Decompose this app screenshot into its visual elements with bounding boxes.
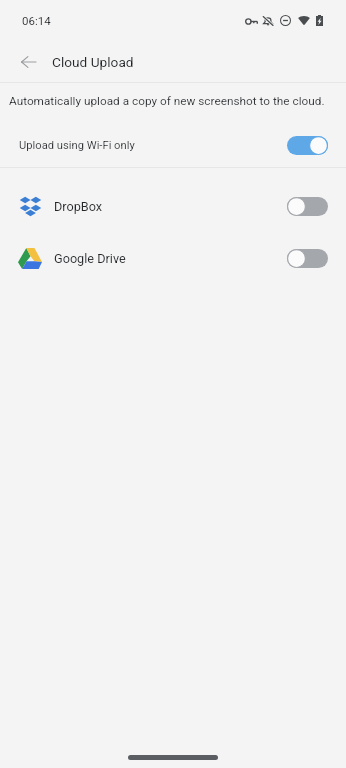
staticText: DropBox xyxy=(54,199,103,214)
button[interactable]: Back xyxy=(8,42,48,82)
staticText: Google Drive xyxy=(54,251,126,266)
staticText: 06:14 xyxy=(22,14,51,27)
staticText: Upload using Wi-Fi only xyxy=(19,139,135,152)
staticText: Automatically upload a copy of new scree… xyxy=(9,94,325,108)
button[interactable]: Upload using Wi-Fi only xyxy=(0,123,346,167)
button[interactable]: Google Drive xyxy=(0,232,346,284)
button[interactable]: DropBox xyxy=(0,180,346,232)
staticText: Cloud Upload xyxy=(52,54,134,70)
